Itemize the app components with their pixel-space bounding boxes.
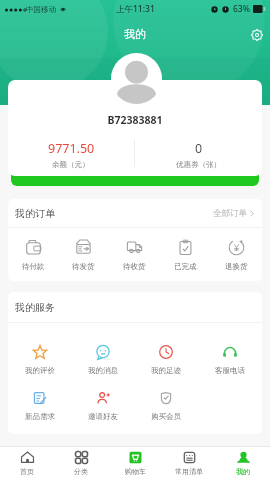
button[interactable]: 购买会员 (134, 378, 198, 434)
button[interactable]: 待收货 (109, 228, 160, 281)
button[interactable]: 分类 (54, 447, 108, 480)
button[interactable]: 我的订单 (8, 199, 262, 227)
staticText: 邀请好友 (88, 412, 118, 421)
staticText: 我的服务 (15, 301, 55, 314)
button[interactable]: 0 (135, 140, 262, 169)
staticText: 余额（元） (52, 160, 90, 169)
button[interactable]: 新品需求 (8, 378, 71, 434)
staticText: 待付款 (22, 262, 45, 271)
staticText: 常用清单 (175, 467, 203, 476)
staticText: 我的评价 (25, 366, 55, 375)
staticText: 上午11:31 (116, 3, 155, 15)
staticText: 我的 (124, 27, 146, 41)
staticText: 首页 (20, 467, 34, 476)
staticText: B72383881 (8, 113, 262, 127)
button[interactable]: B72383881 (8, 80, 262, 176)
button[interactable]: 购物车 (108, 447, 162, 480)
button[interactable]: 退换货 (211, 228, 262, 281)
button[interactable]: 我的足迹 (134, 341, 198, 378)
staticText: 我的 (236, 467, 250, 476)
button[interactable]: 已完成 (160, 228, 211, 281)
staticText: 我的足迹 (151, 366, 181, 375)
button[interactable]: 待发货 (58, 228, 109, 281)
staticText: 全部订单 (213, 208, 247, 219)
button[interactable]: 常用清单 (162, 447, 216, 480)
staticText: 9771.50 (48, 140, 95, 157)
staticText: 已完成 (174, 262, 197, 271)
staticText: 中国移动 (26, 5, 56, 14)
staticText: 待发货 (72, 262, 95, 271)
staticText: 优惠券（张） (176, 160, 221, 169)
staticText: 分类 (74, 467, 88, 476)
button[interactable]: 邀请好友 (71, 378, 134, 434)
staticText: 购物车 (125, 467, 146, 476)
button[interactable]: 设置 (249, 27, 264, 42)
staticText: 购买会员 (151, 412, 181, 421)
staticText: 新品需求 (25, 412, 55, 421)
button[interactable]: 客服电话 (198, 341, 262, 378)
staticText: 我的订单 (15, 207, 55, 220)
button[interactable]: 待付款 (8, 228, 58, 281)
button[interactable]: 我的评价 (8, 341, 71, 378)
staticText: 待收货 (123, 262, 146, 271)
staticText: 我的消息 (88, 366, 118, 375)
staticText: 63% (233, 3, 250, 15)
staticText: 退换货 (225, 262, 248, 271)
button[interactable]: 我的 (216, 447, 270, 480)
button[interactable]: 9771.50 (8, 140, 134, 169)
button[interactable]: 首页 (0, 447, 54, 480)
button[interactable]: 我的消息 (71, 341, 134, 378)
staticText: 0 (195, 140, 203, 157)
staticText: 客服电话 (215, 366, 245, 375)
